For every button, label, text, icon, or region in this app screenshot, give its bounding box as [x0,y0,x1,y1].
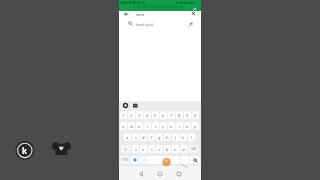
staticText: sams [136,12,145,17]
staticText: . [184,158,186,163]
button[interactable]: h [164,133,171,141]
button[interactable]: w [128,122,135,130]
button[interactable]: e [136,122,143,130]
staticText: g [158,135,161,140]
staticText: j [175,135,177,140]
staticText: t [155,124,157,129]
button[interactable] [122,102,129,109]
button[interactable]: i [176,122,183,130]
staticText: l [191,135,193,140]
button[interactable]: 5 [152,111,159,119]
button[interactable]: l [188,133,195,141]
staticText: k [182,135,185,140]
button[interactable] [123,11,130,18]
button[interactable]: hand-dyed [119,18,201,30]
staticText: 7 [170,113,173,118]
staticText: n [174,147,177,152]
staticText: e [138,124,141,129]
button[interactable]: g [156,133,163,141]
staticText: m [182,147,186,152]
staticText: 5 [154,113,157,118]
staticText: a [126,135,129,140]
staticText: z [135,147,137,152]
button[interactable]: ?123 [120,156,130,164]
staticText: 6 [162,113,165,118]
button[interactable]: m [180,145,187,153]
button[interactable] [175,170,183,178]
button[interactable]: j [172,133,179,141]
button[interactable]: p [192,122,199,130]
button[interactable]: ⌫ [188,145,198,153]
button[interactable]: 0 [192,111,199,119]
staticText: 1 [122,113,125,118]
staticText: y [162,124,165,129]
button[interactable]: b [164,145,171,153]
button[interactable]: o [184,122,191,130]
staticText: k [22,145,27,156]
button[interactable]: d [140,133,147,141]
staticText: c [151,147,153,152]
staticText: i [179,124,181,129]
staticText: s [135,135,137,140]
staticText: ?123 [122,158,128,162]
staticText: w [130,124,134,129]
button[interactable]: q [120,122,127,130]
staticText: v [158,147,161,152]
button[interactable]: ⇧ [121,145,131,153]
button[interactable] [137,170,145,178]
button[interactable]: , [139,156,145,164]
staticText: 9 [186,113,189,118]
staticText: u [170,124,173,129]
button[interactable]: x [140,145,147,153]
staticText: x [142,147,145,152]
button[interactable]: c [148,145,155,153]
button[interactable]: 1 [120,111,127,119]
button[interactable]: 8 [176,111,183,119]
staticText: f [151,135,153,140]
button[interactable]: a [124,133,131,141]
button[interactable] [146,156,180,164]
button[interactable]: 9 [184,111,191,119]
button[interactable] [131,156,138,164]
staticText: r [147,124,149,129]
staticText: p [194,124,197,129]
button[interactable]: t [152,122,159,130]
button[interactable] [189,11,197,18]
button[interactable]: y [160,122,167,130]
staticText: q [122,124,125,129]
button[interactable]: f [148,133,155,141]
staticText: o [186,124,189,129]
button[interactable] [132,102,139,109]
button[interactable]: n [172,145,179,153]
button[interactable]: 3 [136,111,143,119]
staticText: 0 [194,113,197,118]
button[interactable] [190,156,200,164]
button[interactable]: k [180,133,187,141]
staticText: b [166,147,169,152]
button[interactable]: 7 [168,111,175,119]
button[interactable]: v [156,145,163,153]
button[interactable]: s [132,133,139,141]
staticText: 8 [178,113,181,118]
button[interactable]: r [144,122,151,130]
staticText: hand-dyed [136,22,154,27]
staticText: ⇧ [124,147,128,152]
staticText: ⌫ [191,147,196,151]
staticText: h [166,135,169,140]
staticText: 4 [146,113,149,118]
staticText: 3 [138,113,141,118]
button[interactable]: . [181,156,189,164]
button[interactable]: 4 [144,111,151,119]
button[interactable]: 6 [160,111,167,119]
button[interactable]: 2 [128,111,135,119]
staticText: d [142,135,145,140]
button[interactable]: u [168,122,175,130]
staticText: 2 [130,113,133,118]
staticText: , [141,158,143,163]
button[interactable] [156,170,164,178]
button[interactable]: z [132,145,139,153]
